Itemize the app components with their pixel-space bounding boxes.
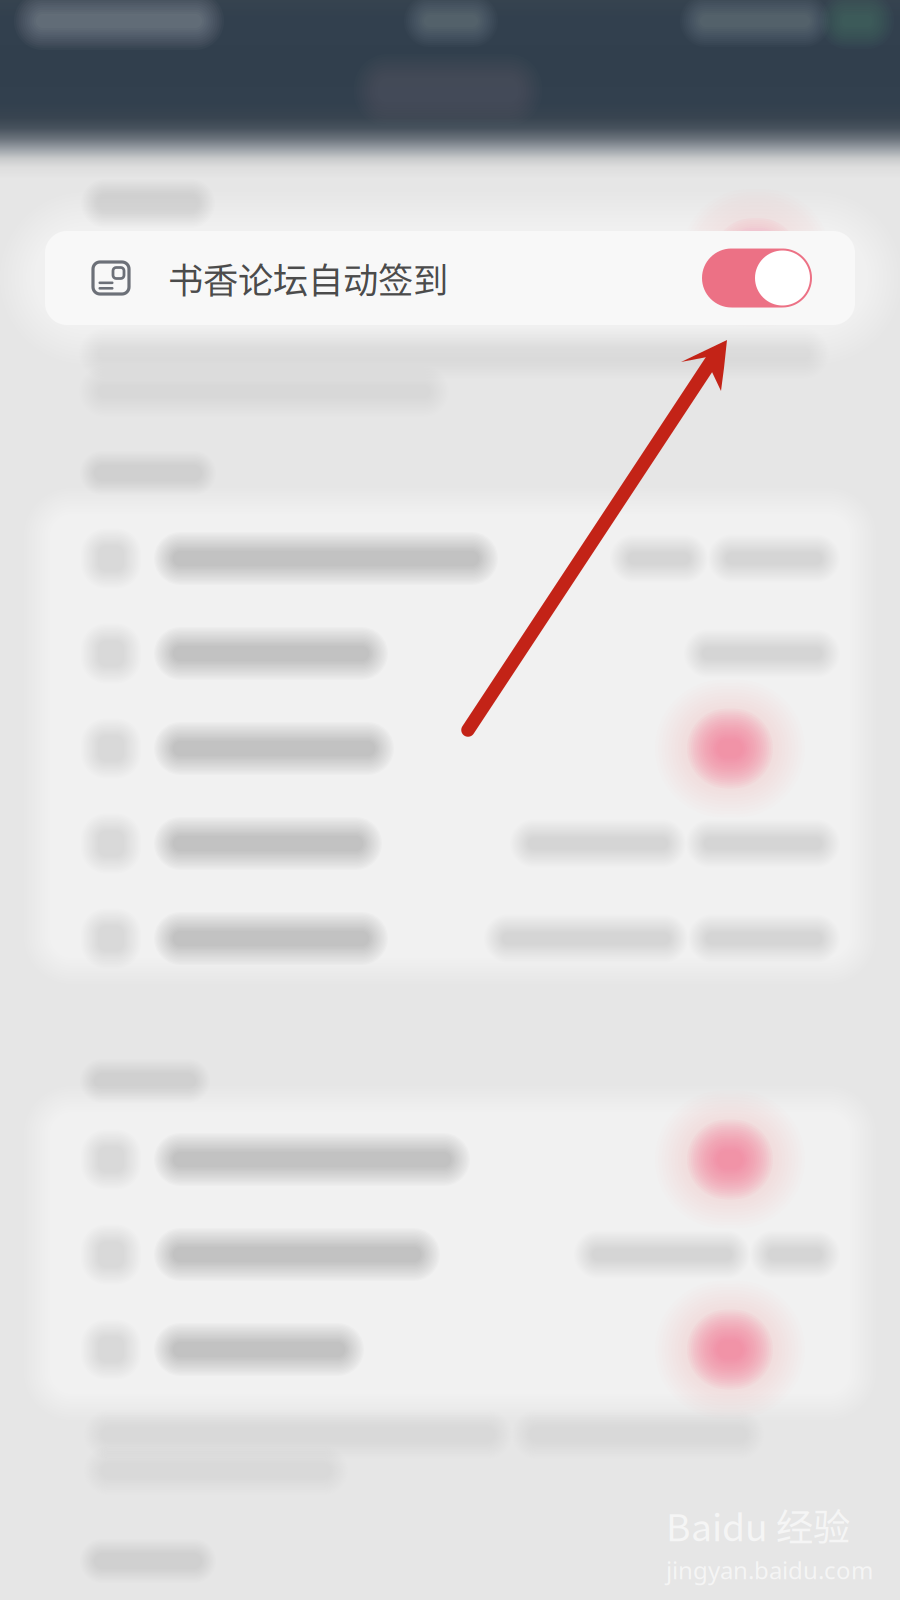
- staticText: 书香论坛自动签到: [168, 252, 448, 304]
- staticText: Baidu 经验: [666, 1498, 850, 1552]
- button[interactable]: 书香论坛自动签到: [45, 231, 855, 325]
- staticText: jingyan.baidu.com: [666, 1554, 873, 1586]
